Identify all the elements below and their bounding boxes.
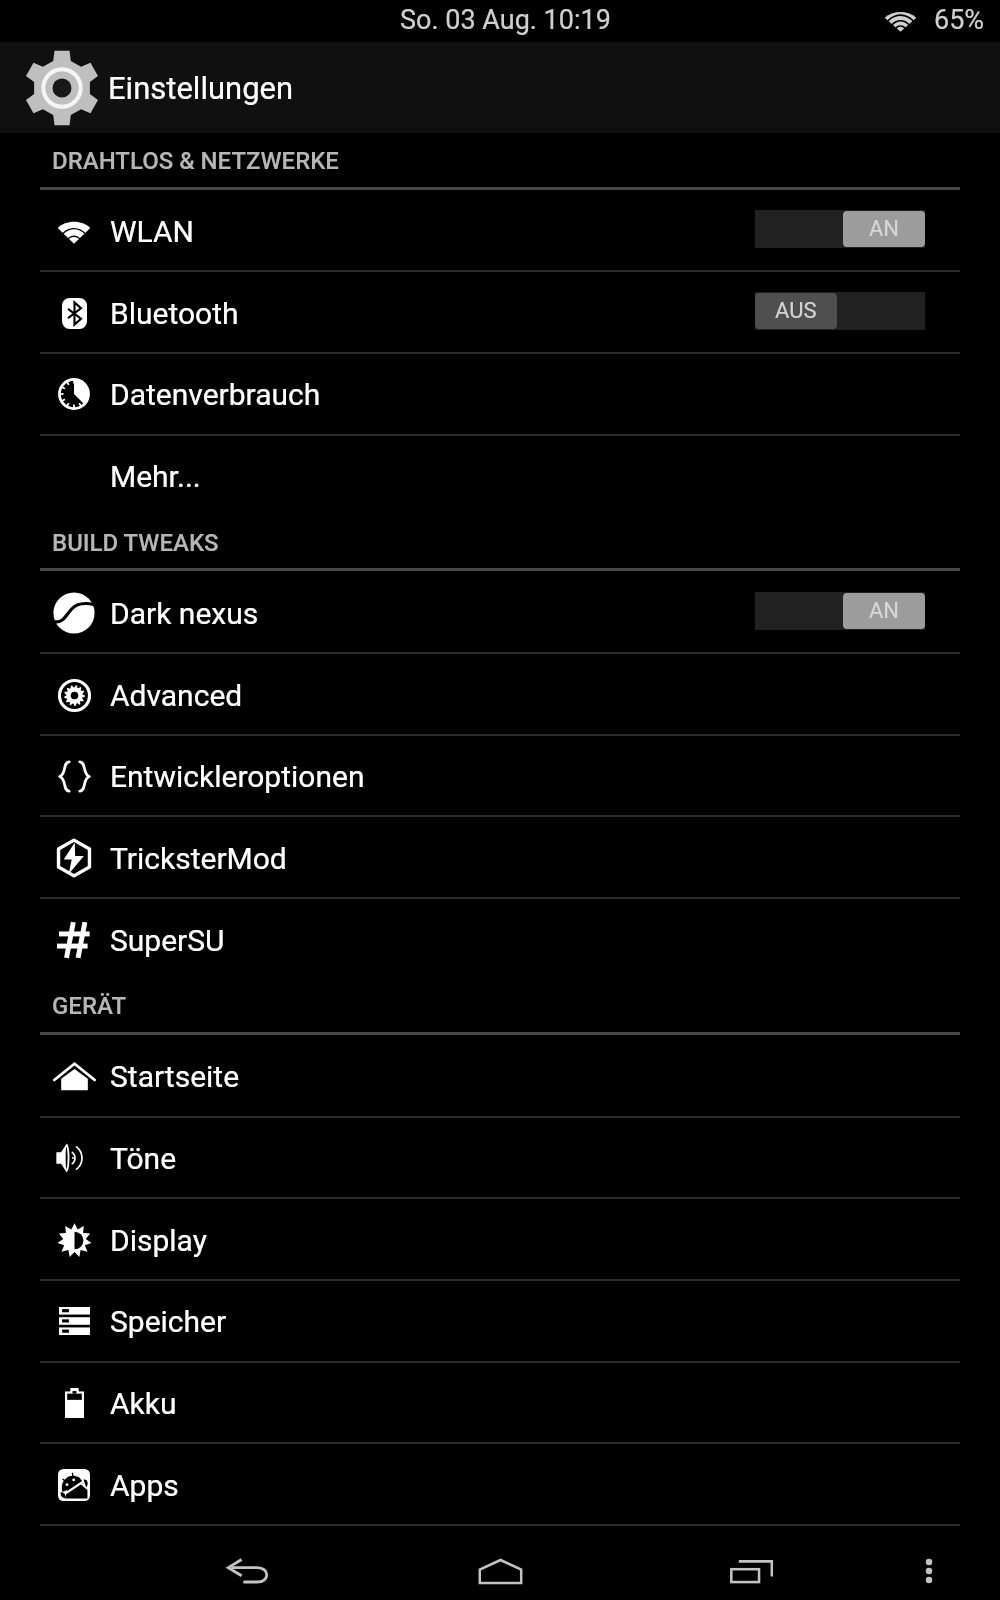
staticText: GERÄT (52, 992, 127, 1020)
staticText: AN (869, 216, 900, 242)
staticText: Display (110, 1223, 207, 1258)
button[interactable]: TricksterMod (0, 817, 1000, 899)
button[interactable]: Töne (0, 1117, 1000, 1199)
button[interactable]: Datenverbrauch (0, 353, 1000, 435)
staticText: WLAN (110, 214, 195, 249)
button[interactable]: Apps (0, 1444, 1000, 1526)
staticText: AUS (775, 298, 817, 324)
staticText: Töne (110, 1141, 177, 1176)
button[interactable]: Display (0, 1199, 1000, 1281)
button[interactable]: SuperSU (0, 899, 1000, 981)
button[interactable]: Advanced (0, 654, 1000, 736)
staticText: Bluetooth (110, 296, 239, 331)
staticText: Advanced (110, 678, 243, 713)
staticText: Einstellungen (108, 70, 294, 106)
staticText: Speicher (110, 1304, 227, 1339)
staticText: Apps (110, 1468, 179, 1503)
button[interactable]: AUS (755, 292, 925, 330)
button[interactable]: AN (755, 210, 925, 248)
staticText: DRAHTLOS & NETZWERKE (52, 147, 339, 175)
staticText: Entwickleroptionen (110, 759, 365, 794)
button[interactable]: Entwickleroptionen (0, 735, 1000, 817)
staticText: TricksterMod (110, 841, 287, 876)
staticText: SuperSU (110, 923, 225, 958)
button[interactable]: AN (755, 592, 925, 630)
button[interactable]: Home (452, 1527, 548, 1600)
staticText: AN (869, 598, 900, 624)
staticText: So. 03 Aug. 10:19 (400, 4, 611, 36)
button[interactable]: Recent apps (704, 1527, 800, 1600)
staticText: 65% (934, 4, 985, 36)
staticText: Datenverbrauch (110, 377, 321, 412)
staticText: Akku (110, 1386, 177, 1421)
button[interactable]: Startseite (0, 1035, 1000, 1117)
button[interactable]: Bluetooth (0, 272, 1000, 354)
staticText: Mehr... (110, 459, 201, 494)
button[interactable]: Akku (0, 1362, 1000, 1444)
staticText: BUILD TWEAKS (52, 529, 219, 557)
button[interactable]: Back (200, 1527, 296, 1600)
button[interactable]: Speicher (0, 1280, 1000, 1362)
button[interactable]: Mehr... (0, 435, 1000, 517)
button[interactable]: WLAN (0, 190, 1000, 272)
button[interactable]: More options (881, 1527, 977, 1600)
staticText: Startseite (110, 1059, 240, 1094)
button[interactable]: Dark nexus (0, 572, 1000, 654)
staticText: Dark nexus (110, 596, 259, 631)
